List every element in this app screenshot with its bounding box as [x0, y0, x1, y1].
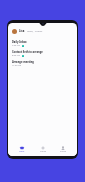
staticText: Lisa	[19, 29, 25, 33]
button[interactable]: Create	[36, 145, 50, 153]
staticText: Daily Inbox	[12, 40, 27, 43]
staticText: Contact Seth to arrange	[12, 50, 43, 53]
button[interactable]: Lisa	[12, 28, 73, 34]
button[interactable]: Arrange meeting	[12, 60, 73, 70]
other: Profile	[61, 146, 65, 150]
staticText: Create	[40, 150, 47, 153]
staticText: Inbox	[19, 150, 25, 153]
button[interactable]: Daily Inbox	[12, 40, 73, 50]
staticText: 8:00 AM	[12, 54, 20, 57]
button[interactable]: Contact Seth to arrange	[12, 50, 73, 60]
staticText: Profile	[60, 150, 67, 153]
staticText: Arrange meeting	[12, 60, 34, 63]
staticText: 7:30 AM	[12, 44, 20, 47]
button[interactable]: Profile	[56, 145, 70, 153]
button[interactable]: Inbox	[15, 145, 29, 153]
other: Create	[41, 146, 45, 150]
staticText: 11:00 AM	[12, 64, 22, 67]
staticText: Today, 12 tasks	[27, 30, 43, 33]
other: Inbox	[20, 146, 24, 150]
